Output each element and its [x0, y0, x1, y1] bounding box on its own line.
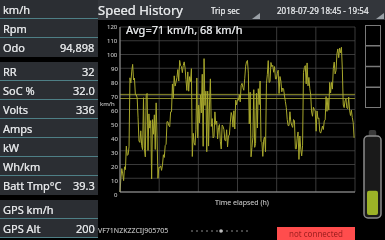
button[interactable]: Battery state of charge [364, 130, 381, 218]
staticText: 110 [107, 37, 118, 45]
button[interactable]: SoC % [0, 81, 98, 100]
staticText: 2018-07-29 18:45 - 19:54 [277, 5, 369, 16]
staticText: Speed History [98, 1, 183, 19]
button[interactable]: Trip sec [189, 0, 261, 20]
staticText: 0 [114, 191, 118, 199]
button[interactable]: RR [0, 62, 98, 81]
staticText: 50 [111, 121, 118, 129]
staticText: not connected [289, 228, 343, 239]
staticText: 10 [111, 177, 118, 185]
staticText: Batt Tmp°C [3, 178, 62, 193]
button[interactable]: GPS Alt [0, 219, 98, 238]
button[interactable]: km/h [0, 0, 98, 19]
button[interactable]: GPS km/h [0, 200, 98, 219]
button[interactable]: Amps [0, 119, 98, 138]
staticText: 200 [76, 221, 95, 236]
staticText: 80 [111, 79, 118, 87]
button[interactable]: Volts [0, 100, 98, 119]
staticText: Rpm [3, 21, 27, 36]
staticText: Odo [3, 40, 26, 55]
staticText: Amps [3, 121, 33, 136]
button[interactable]: 2018-07-29 18:45 - 19:54 [261, 0, 385, 20]
button[interactable]: Wh/km [0, 157, 98, 176]
staticText: 94,898 [60, 40, 95, 55]
staticText: 32 [82, 64, 95, 79]
staticText: km/h [3, 2, 31, 17]
staticText: GPS Alt [3, 221, 41, 236]
staticText: Time elapsed (h) [215, 198, 269, 208]
button[interactable]: Batt Tmp°C [0, 176, 98, 195]
staticText: 336 [76, 102, 95, 117]
staticText: Avg=71 km/h, 68 km/h [126, 22, 243, 37]
staticText: kW [3, 140, 20, 155]
staticText: 32.0 [73, 83, 95, 98]
staticText: Wh/km [3, 159, 41, 174]
staticText: RR [3, 64, 17, 79]
staticText: km/h [100, 100, 115, 108]
staticText: 39.3 [73, 178, 95, 193]
button[interactable]: Power gauge [365, 25, 381, 108]
staticText: VF71NZKZZCIJ905705 [98, 226, 169, 236]
staticText: GPS km/h [3, 202, 54, 217]
staticText: 40 [111, 135, 118, 143]
staticText: Trip sec [211, 5, 240, 16]
staticText: SoC % [3, 83, 35, 98]
staticText: 30 [111, 149, 118, 157]
staticText: 90 [111, 65, 118, 73]
staticText: 70 [111, 93, 118, 101]
button[interactable]: not connected [277, 227, 355, 240]
staticText: 20 [111, 163, 118, 171]
button[interactable]: Rpm [0, 19, 98, 38]
staticText: Volts [3, 102, 29, 117]
button[interactable]: kW [0, 138, 98, 157]
button[interactable]: Odo [0, 38, 98, 57]
staticText: 60 [111, 107, 118, 115]
staticText: 120 [107, 23, 118, 31]
staticText: 100 [107, 51, 118, 59]
